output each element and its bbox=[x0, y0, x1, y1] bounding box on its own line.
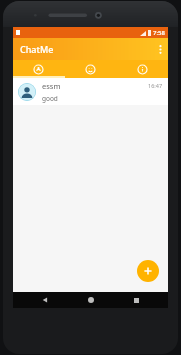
button[interactable]: More options bbox=[152, 38, 168, 60]
button[interactable]: About bbox=[116, 60, 168, 78]
button[interactable]: essm bbox=[13, 78, 168, 105]
button[interactable]: New chat bbox=[137, 260, 159, 282]
button[interactable]: Back bbox=[32, 292, 58, 308]
button[interactable]: Recent apps bbox=[123, 292, 149, 308]
button[interactable]: Friends bbox=[64, 60, 116, 78]
staticText: ChatMe bbox=[20, 43, 54, 55]
button[interactable]: Home bbox=[78, 292, 104, 308]
staticText: good bbox=[42, 94, 58, 103]
staticText: essm bbox=[42, 81, 61, 91]
staticText: 16:47 bbox=[148, 82, 163, 89]
button[interactable]: Chats bbox=[13, 60, 64, 78]
staticText: 7:58 bbox=[153, 29, 165, 37]
